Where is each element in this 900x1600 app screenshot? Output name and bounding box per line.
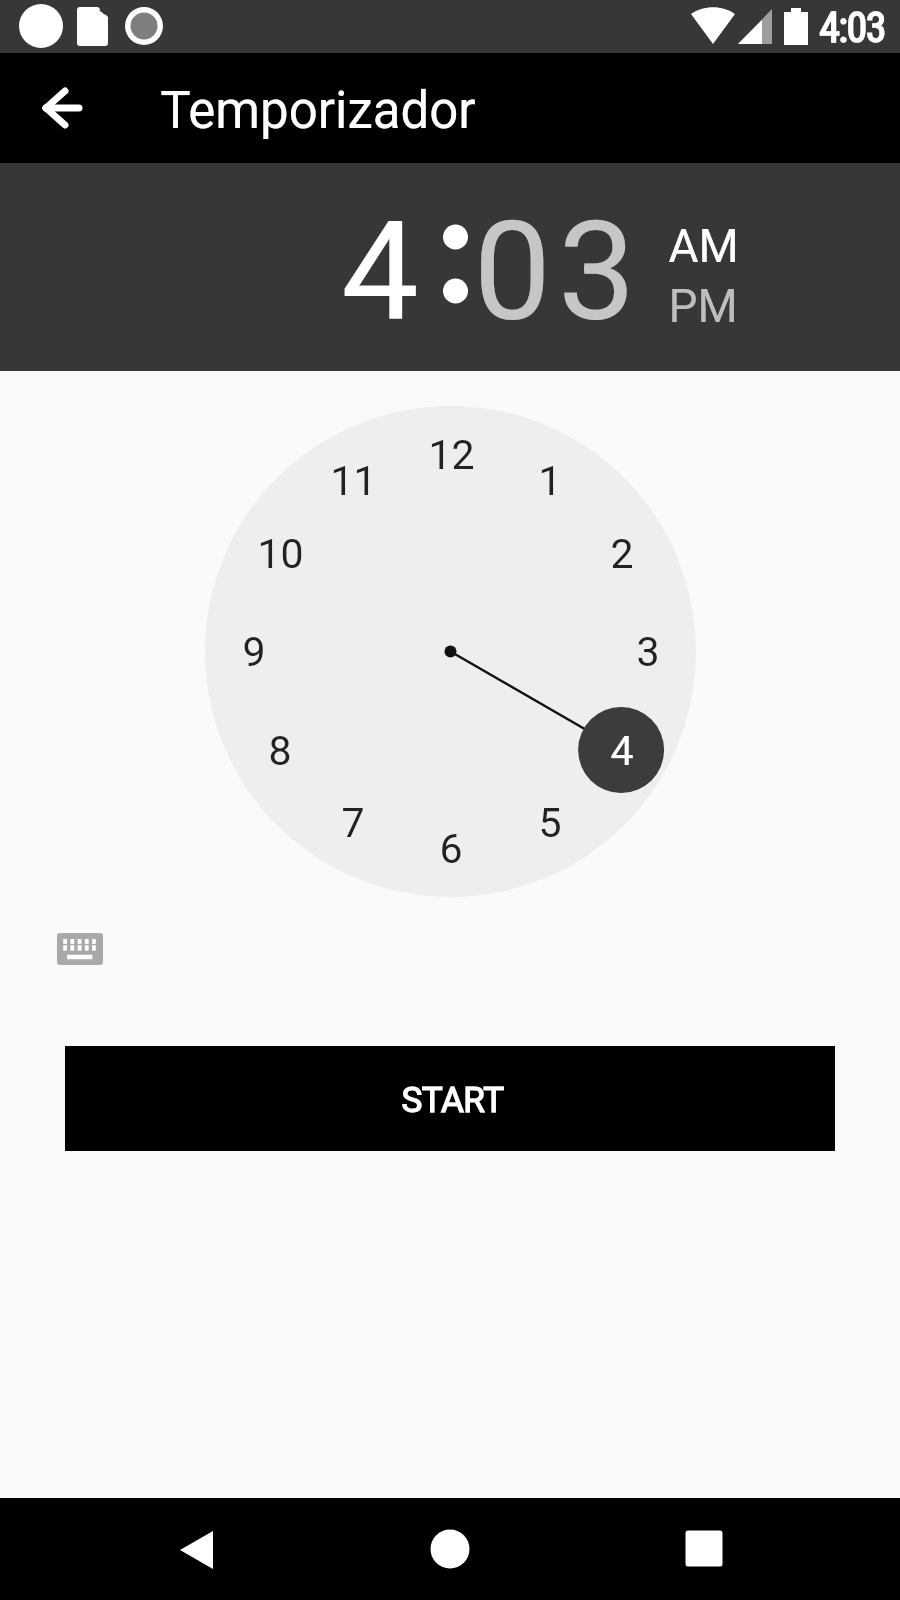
button[interactable]: 12 bbox=[422, 426, 480, 484]
button[interactable]: 5 bbox=[521, 794, 579, 852]
staticText: 4:03 bbox=[819, 3, 885, 52]
staticText: 4 bbox=[341, 191, 419, 353]
button[interactable]: PM bbox=[668, 279, 738, 333]
staticText: 2 bbox=[610, 530, 634, 578]
button[interactable]: 11 bbox=[324, 452, 382, 510]
staticText: 03 bbox=[473, 191, 643, 353]
button[interactable]: START bbox=[65, 1046, 835, 1151]
staticText: AM bbox=[668, 219, 739, 273]
button[interactable]: Navigate up bbox=[14, 60, 110, 156]
staticText: PM bbox=[668, 279, 738, 333]
button[interactable]: 4 bbox=[593, 722, 651, 780]
button[interactable]: 2 bbox=[593, 525, 651, 583]
button[interactable]: 4 bbox=[341, 191, 419, 353]
button[interactable]: 9 bbox=[225, 623, 283, 681]
button[interactable]: 03 bbox=[480, 191, 650, 353]
staticText: 10 bbox=[257, 530, 304, 578]
button[interactable]: Switch to keyboard input bbox=[57, 933, 103, 965]
staticText: 4 bbox=[610, 727, 634, 775]
staticText: 7 bbox=[341, 799, 365, 847]
staticText: 12 bbox=[428, 431, 475, 479]
staticText: 6 bbox=[439, 825, 463, 873]
button[interactable]: Back bbox=[153, 1498, 233, 1600]
button[interactable]: AM bbox=[668, 219, 739, 273]
staticText: 1 bbox=[538, 457, 562, 505]
button[interactable]: 3 bbox=[619, 623, 677, 681]
button[interactable]: 7 bbox=[324, 794, 382, 852]
button[interactable]: Recent apps bbox=[664, 1498, 744, 1600]
button[interactable]: 8 bbox=[251, 722, 309, 780]
staticText: Temporizador bbox=[160, 81, 476, 141]
button[interactable]: 1 bbox=[521, 452, 579, 510]
staticText: 9 bbox=[242, 628, 266, 676]
staticText: START bbox=[401, 1080, 504, 1121]
staticText: 8 bbox=[268, 727, 292, 775]
staticText: 11 bbox=[330, 457, 377, 505]
button[interactable]: 6 bbox=[422, 820, 480, 878]
button[interactable]: 10 bbox=[251, 525, 309, 583]
button[interactable]: Home bbox=[410, 1498, 490, 1600]
staticText: 5 bbox=[538, 799, 562, 847]
staticText: 3 bbox=[636, 628, 660, 676]
